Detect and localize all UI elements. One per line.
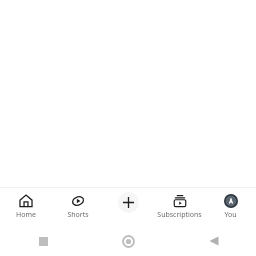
staticText: Home xyxy=(16,210,36,220)
button[interactable]: Subscriptions xyxy=(154,188,205,226)
staticText: Subscriptions xyxy=(157,210,202,220)
staticText: Shorts xyxy=(67,210,89,220)
button[interactable]: Shorts xyxy=(52,188,103,226)
button[interactable]: You xyxy=(205,188,256,226)
button[interactable]: Create xyxy=(103,188,154,226)
button[interactable]: Back xyxy=(171,226,256,256)
button[interactable]: Home xyxy=(0,188,52,226)
button[interactable]: Recent apps xyxy=(0,226,86,256)
staticText: You xyxy=(224,210,237,220)
button[interactable]: Home xyxy=(86,226,171,256)
